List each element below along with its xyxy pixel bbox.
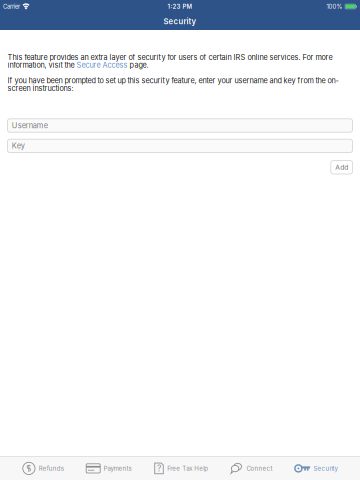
staticText: page.	[127, 61, 148, 70]
staticText: If you have been prompted to set up this…	[7, 76, 338, 85]
button[interactable]: ?	[154, 457, 208, 480]
staticText: screen instructions:	[7, 84, 73, 93]
staticText: Payments	[104, 465, 132, 472]
staticText: Connect	[246, 465, 272, 472]
staticText: 1:23 PM	[167, 3, 192, 10]
button[interactable]: Add	[331, 161, 352, 174]
staticText: Username	[12, 121, 48, 130]
staticText: This feature provides an extra layer of …	[7, 53, 332, 62]
button[interactable]: Payments	[86, 457, 132, 480]
staticText: Secure Access	[76, 61, 127, 70]
staticText: Refunds	[39, 465, 64, 472]
staticText: Add	[335, 163, 348, 171]
button[interactable]: Connect	[231, 457, 272, 480]
staticText: information, visit the	[7, 61, 76, 70]
button[interactable]: Security	[295, 457, 337, 480]
staticText: Carrier	[3, 3, 20, 10]
staticText: Key	[12, 141, 25, 150]
staticText: ?	[157, 463, 161, 473]
staticText: Security	[313, 465, 337, 472]
button[interactable]: Refunds	[22, 457, 64, 480]
staticText: Security	[163, 17, 196, 26]
staticText: 100%	[327, 3, 343, 10]
staticText: Free Tax Help	[167, 465, 208, 472]
